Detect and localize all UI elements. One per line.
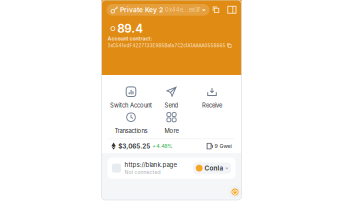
staticText: Receive [202, 102, 222, 109]
button[interactable]: More [151, 112, 192, 134]
staticText: https://blank.page [124, 161, 177, 168]
staticText: 0xC541edF4227133E9B5Ba1a7C2c1A1AAAA05586… [107, 43, 225, 48]
button[interactable]: Private Key 2 [106, 4, 209, 16]
staticText: 9 Gwei [214, 143, 231, 149]
button[interactable]: Switch Account [111, 86, 151, 108]
staticText: Switch Account [110, 102, 152, 109]
button[interactable]: Conla [193, 162, 231, 174]
staticText: Send [164, 102, 178, 109]
button[interactable]: Copy address [212, 6, 219, 13]
staticText: 0x44e...ee3f [165, 6, 200, 13]
button[interactable]: Wallet menu [227, 184, 243, 200]
button[interactable]: Expand view [227, 5, 236, 14]
staticText: Private Key 2 [120, 6, 163, 14]
staticText: Account contract: [107, 35, 152, 42]
staticText: +4.48% [152, 143, 172, 149]
staticText: Not connected [124, 169, 160, 175]
staticText: $3,065.25 [118, 142, 150, 150]
staticText: Conla [204, 164, 223, 172]
staticText: Transactions [114, 127, 147, 134]
button[interactable]: Send [151, 86, 192, 108]
button[interactable]: Receive [192, 86, 232, 108]
staticText: More [164, 127, 178, 134]
button[interactable]: Transactions [111, 112, 151, 134]
staticText: 89.4 [117, 22, 143, 36]
